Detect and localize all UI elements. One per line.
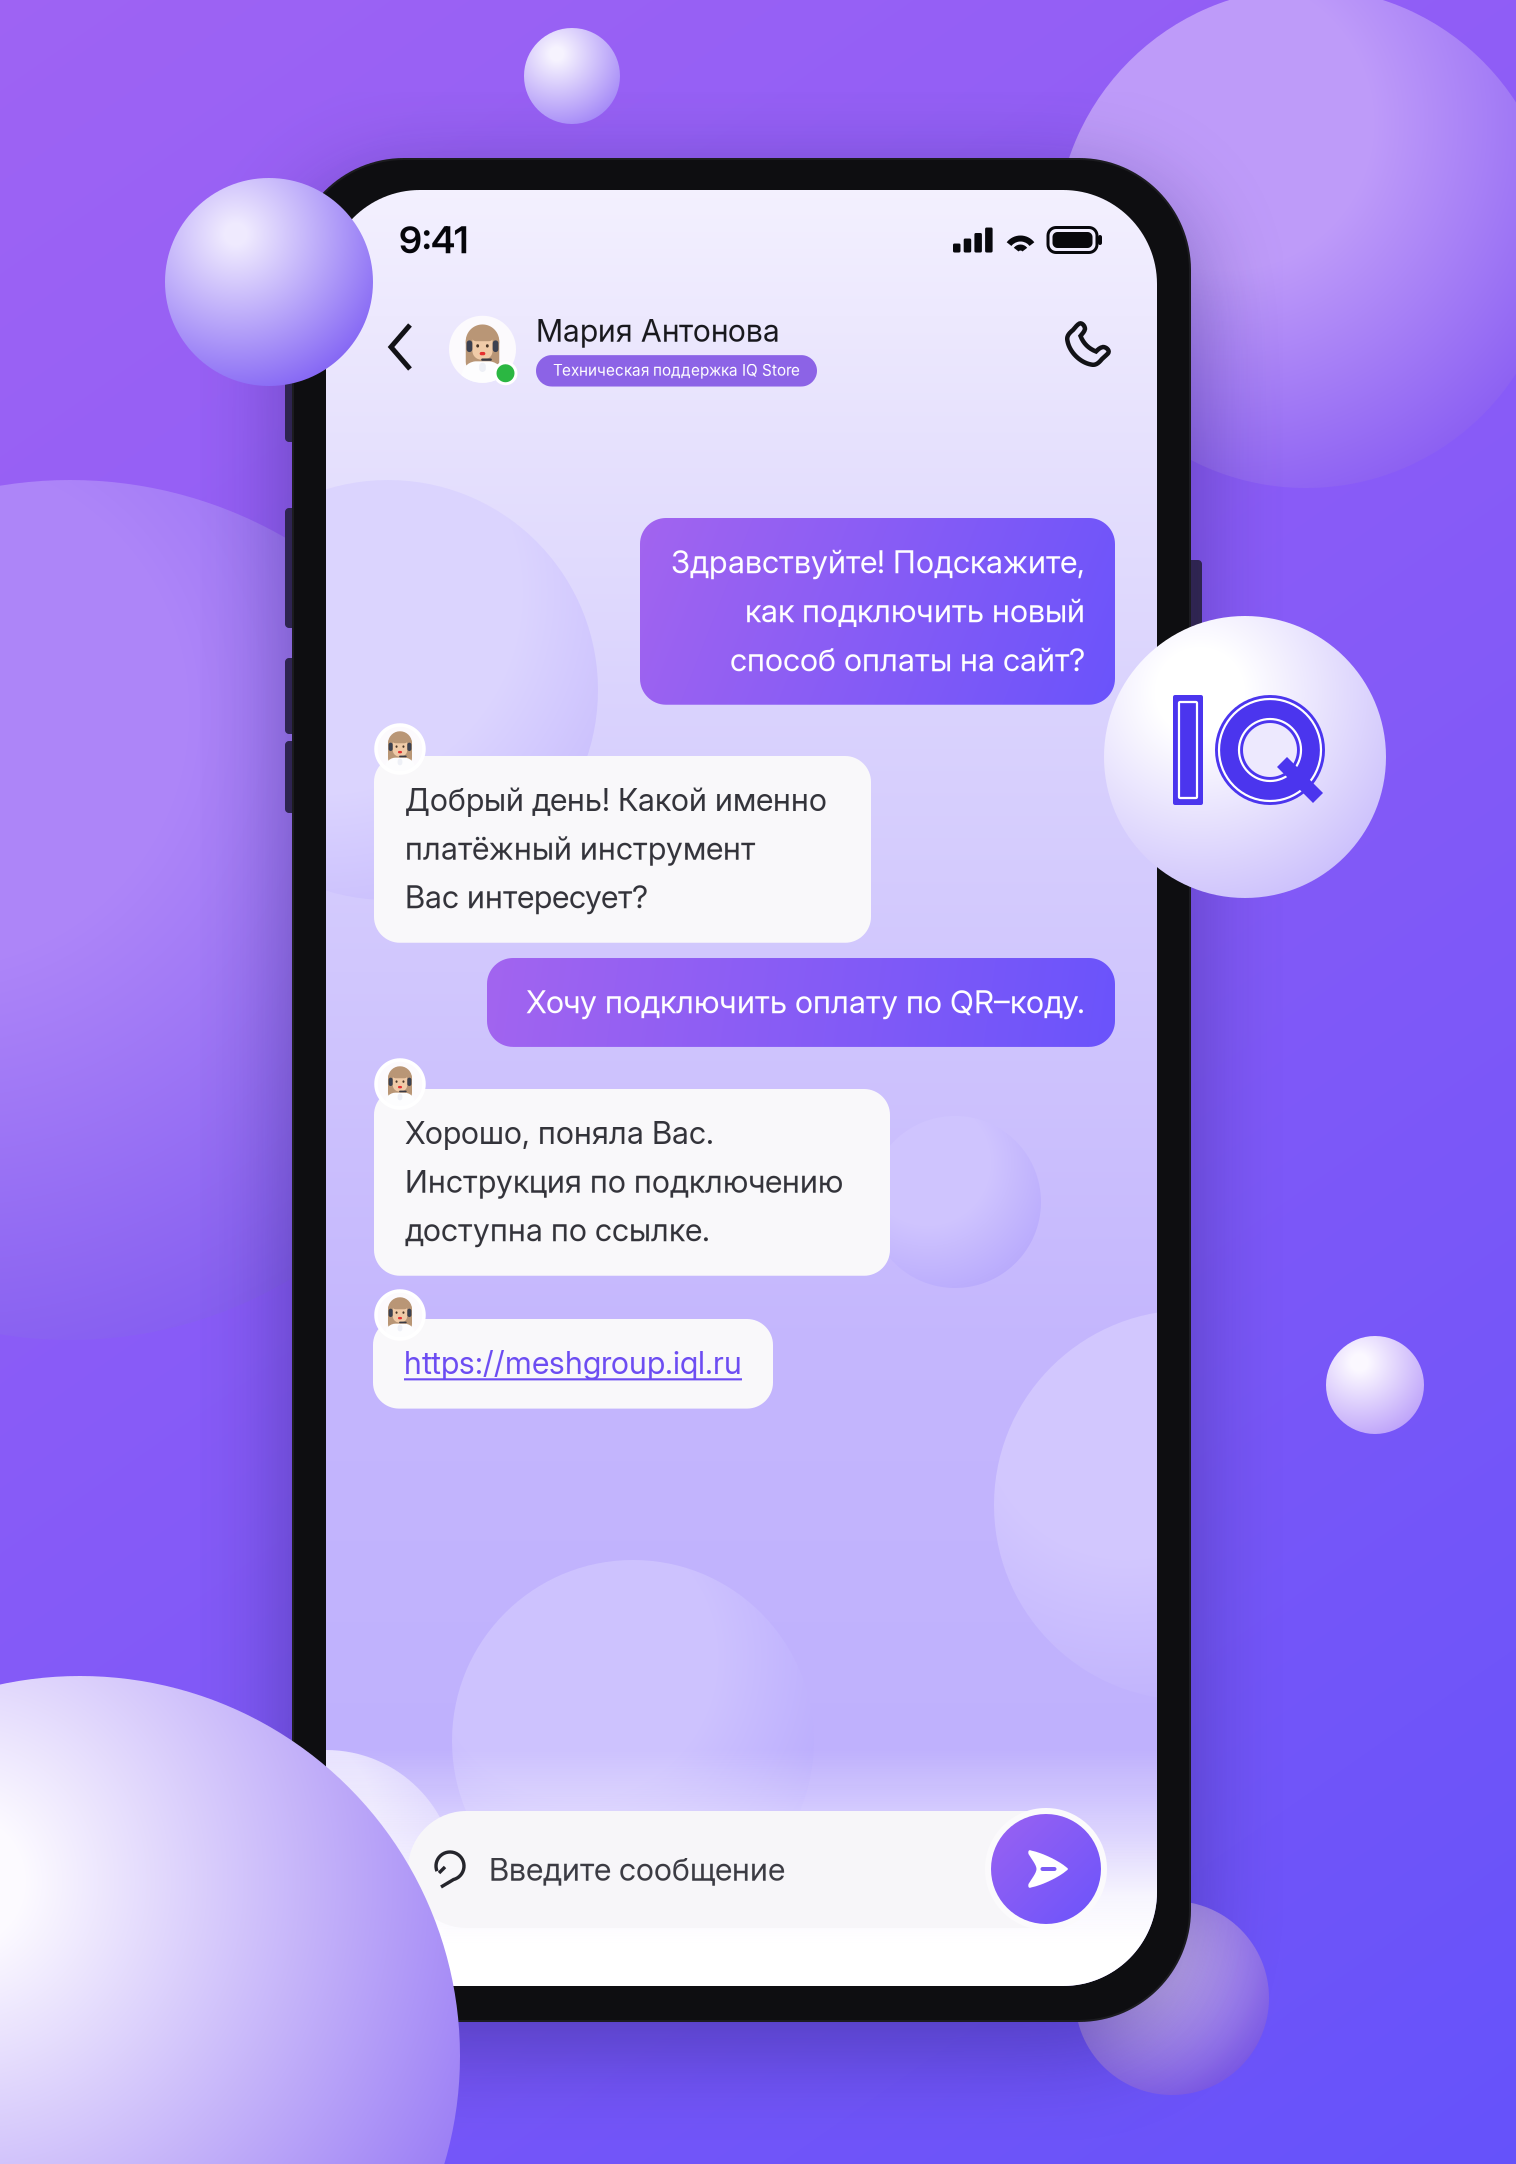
staticText: https://meshgroup.iql.ru (404, 1344, 742, 1382)
staticText: Техническая поддержка IQ Store (553, 361, 800, 379)
staticText: Вас интересует? (405, 878, 648, 916)
staticText: Хорошо, поняла Вас. (405, 1114, 714, 1152)
staticText: платёжный инструмент (405, 830, 755, 867)
button[interactable]: Call (1062, 318, 1114, 370)
staticText: как подключить новый (745, 592, 1085, 630)
staticText: Введите сообщение (489, 1851, 785, 1888)
button[interactable]: Send (985, 1808, 1107, 1930)
button[interactable]: Мария Антонова (449, 312, 817, 386)
staticText: Здравствуйте! Подскажите, (671, 543, 1085, 581)
button[interactable]: Back (383, 322, 419, 372)
staticText: Хочу подключить оплату по QR–коду. (526, 983, 1085, 1021)
staticText: способ оплаты на сайт? (730, 641, 1085, 679)
staticText: 9:41 (399, 217, 469, 262)
staticText: Добрый день! Какой именно (405, 781, 827, 819)
staticText: Мария Антонова (536, 312, 780, 349)
staticText: доступна по ссылке. (405, 1211, 710, 1249)
button[interactable]: https://meshgroup.iql.ru (373, 1319, 773, 1409)
staticText: Инструкция по подключению (405, 1163, 843, 1200)
